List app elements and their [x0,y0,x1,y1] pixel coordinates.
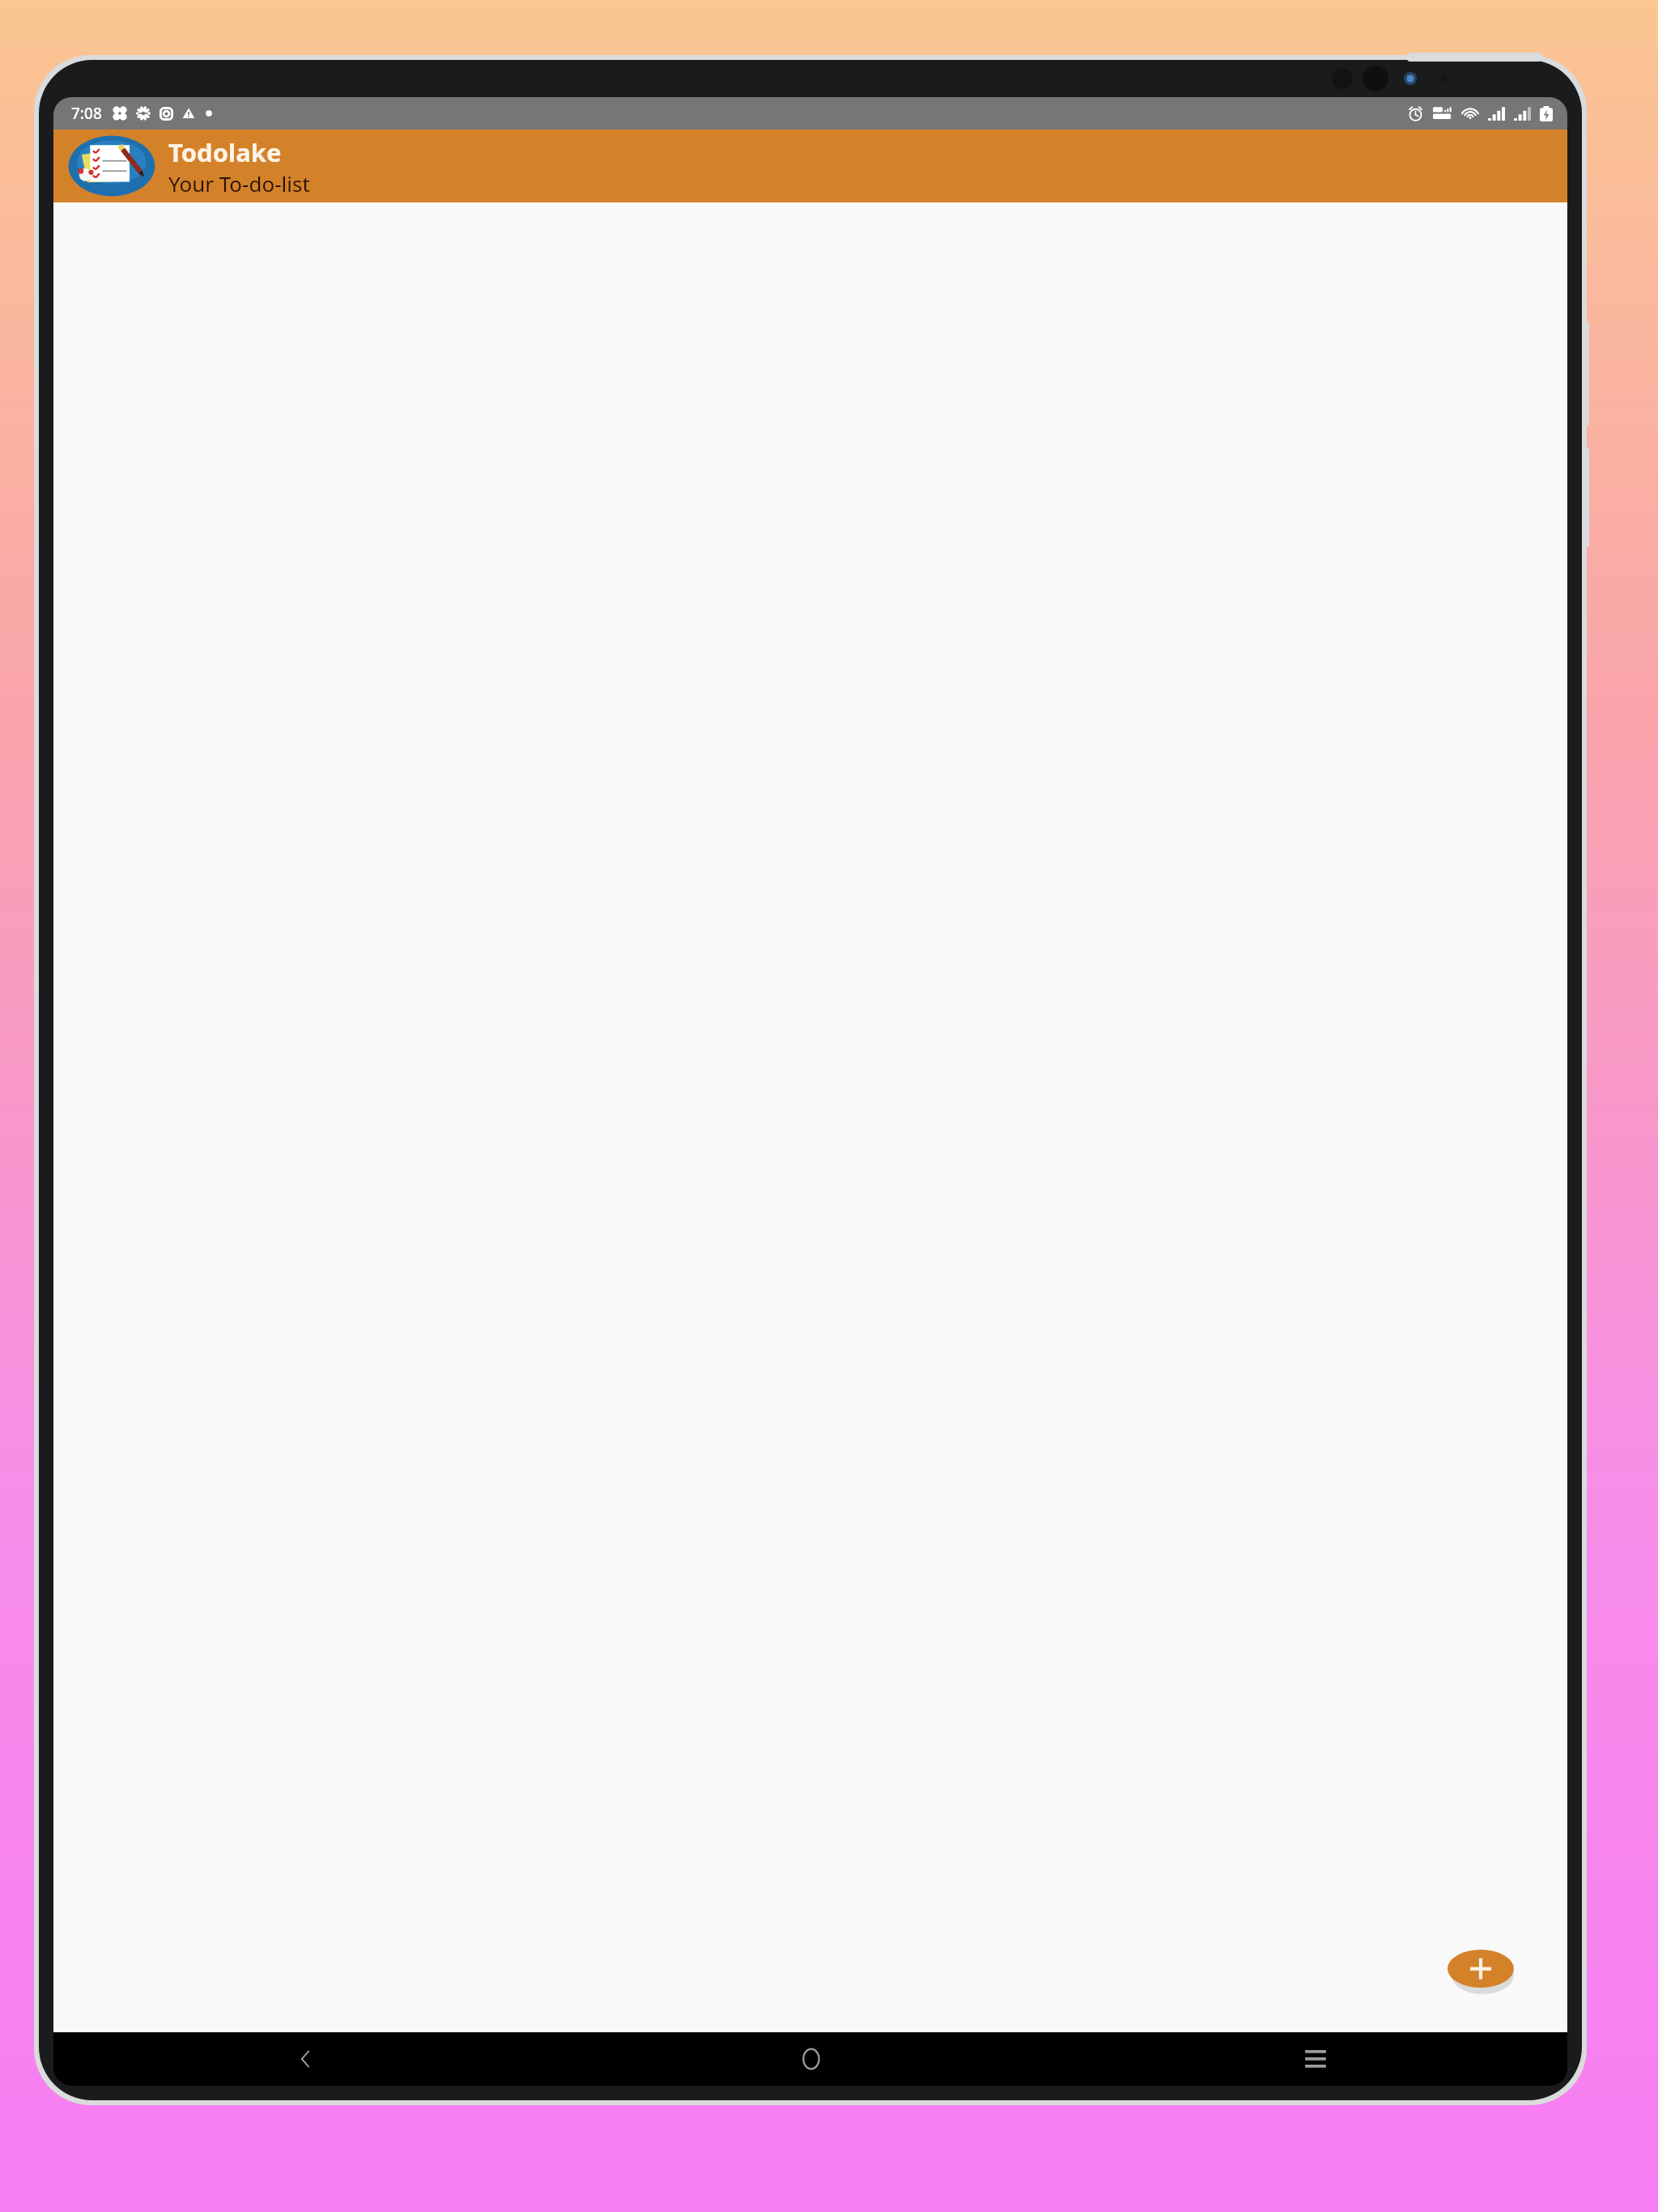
button[interactable]: Recent apps [1063,2032,1567,2086]
button[interactable]: Add task [1448,1950,1514,1990]
staticText: Todolake [168,135,282,169]
staticText: 7:08 [71,103,102,124]
button[interactable]: Home [559,2032,1063,2086]
button[interactable]: Back [53,2032,559,2086]
staticText: Your To-do-list [168,169,310,198]
